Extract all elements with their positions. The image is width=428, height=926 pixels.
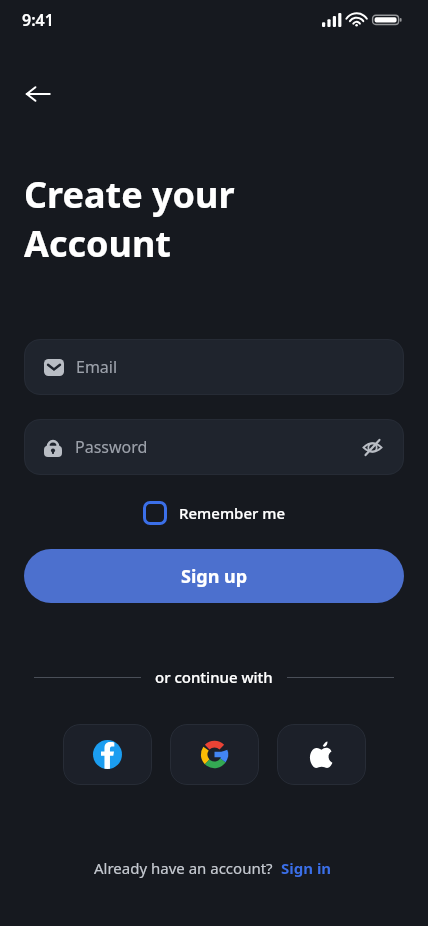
staticText: Sign in bbox=[281, 858, 332, 878]
staticText: or continue with bbox=[155, 667, 273, 687]
staticText: Sign up bbox=[181, 564, 248, 589]
staticText: Already have an account? bbox=[94, 858, 273, 878]
button[interactable]: Sign up with Facebook bbox=[63, 724, 152, 785]
staticText: 9:41 bbox=[22, 9, 54, 31]
button[interactable]: Password bbox=[24, 419, 404, 475]
staticText: Remember me bbox=[179, 503, 286, 523]
staticText: Create your bbox=[24, 170, 235, 219]
button[interactable]: Remember me bbox=[139, 498, 290, 528]
button[interactable]: Sign up with Apple bbox=[277, 724, 366, 785]
button[interactable]: Sign up bbox=[24, 549, 404, 603]
staticText: Email bbox=[76, 356, 118, 378]
button[interactable]: Sign up with Google bbox=[170, 724, 259, 785]
button[interactable]: Show password bbox=[356, 431, 388, 463]
staticText: Account bbox=[24, 219, 171, 268]
staticText: Password bbox=[75, 436, 356, 458]
button[interactable]: Email bbox=[24, 339, 404, 395]
button[interactable]: Back bbox=[14, 70, 62, 118]
button[interactable]: Sign in bbox=[279, 856, 334, 880]
